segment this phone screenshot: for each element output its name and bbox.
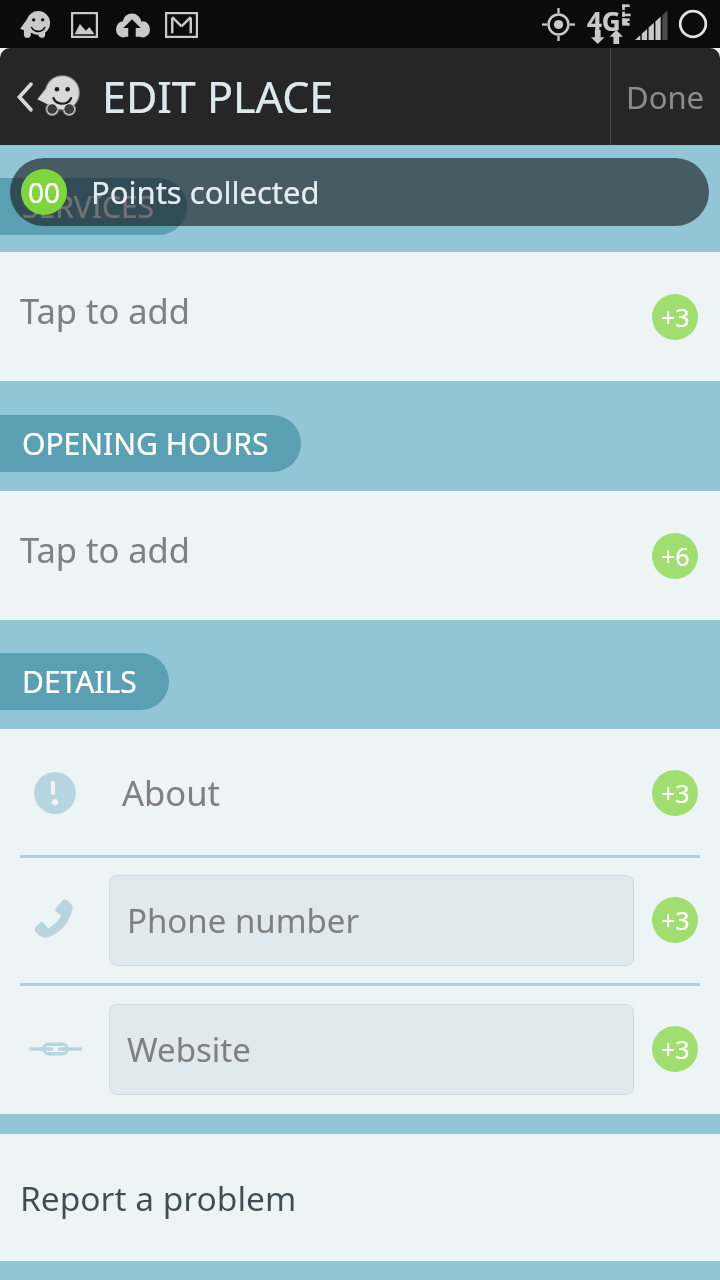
staticText: About [122,769,220,816]
staticText: +3 [661,776,690,810]
button[interactable]: Tap to add [0,252,720,381]
staticText: +3 [661,300,690,334]
button[interactable]: EDIT PLACE [0,48,344,145]
staticText: 00 [28,173,61,211]
staticText: Website [127,1027,251,1072]
button[interactable]: Done [611,48,720,145]
staticText: Done [626,76,705,118]
staticText: DETAILS [22,661,137,702]
staticText: Report a problem [20,1175,297,1221]
staticText: Tap to add [20,287,191,334]
staticText: Phone number [127,898,360,943]
button[interactable]: Phone number [0,856,720,984]
staticText: +6 [661,539,690,573]
button[interactable]: About [0,729,720,856]
button[interactable]: Website [0,984,720,1114]
staticText: 4G [587,3,621,38]
staticText: SERVICES [22,186,155,227]
staticText: OPENING HOURS [22,423,269,464]
staticText: EDIT PLACE [102,67,334,126]
staticText: +3 [661,1032,690,1066]
staticText: +3 [661,903,690,937]
button[interactable]: Tap to add [0,491,720,620]
staticText: Tap to add [20,526,191,573]
staticText: Points collected [91,171,320,213]
button[interactable]: Report a problem [0,1134,720,1261]
